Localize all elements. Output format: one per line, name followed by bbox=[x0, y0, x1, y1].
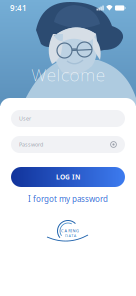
button[interactable]: User bbox=[11, 110, 125, 127]
button[interactable]: I forgot my password bbox=[11, 193, 125, 205]
staticText: DATA bbox=[65, 233, 77, 238]
staticText: Password bbox=[19, 141, 43, 148]
button[interactable]: LOG IN bbox=[11, 167, 125, 187]
staticText: I forgot my password bbox=[28, 194, 108, 204]
staticText: CARING bbox=[61, 228, 79, 233]
button[interactable]: Password bbox=[11, 136, 125, 153]
staticText: 9:41 bbox=[10, 3, 27, 13]
staticText: LOG IN bbox=[56, 173, 80, 181]
staticText: Welcome bbox=[31, 63, 105, 86]
staticText: User bbox=[19, 115, 31, 122]
